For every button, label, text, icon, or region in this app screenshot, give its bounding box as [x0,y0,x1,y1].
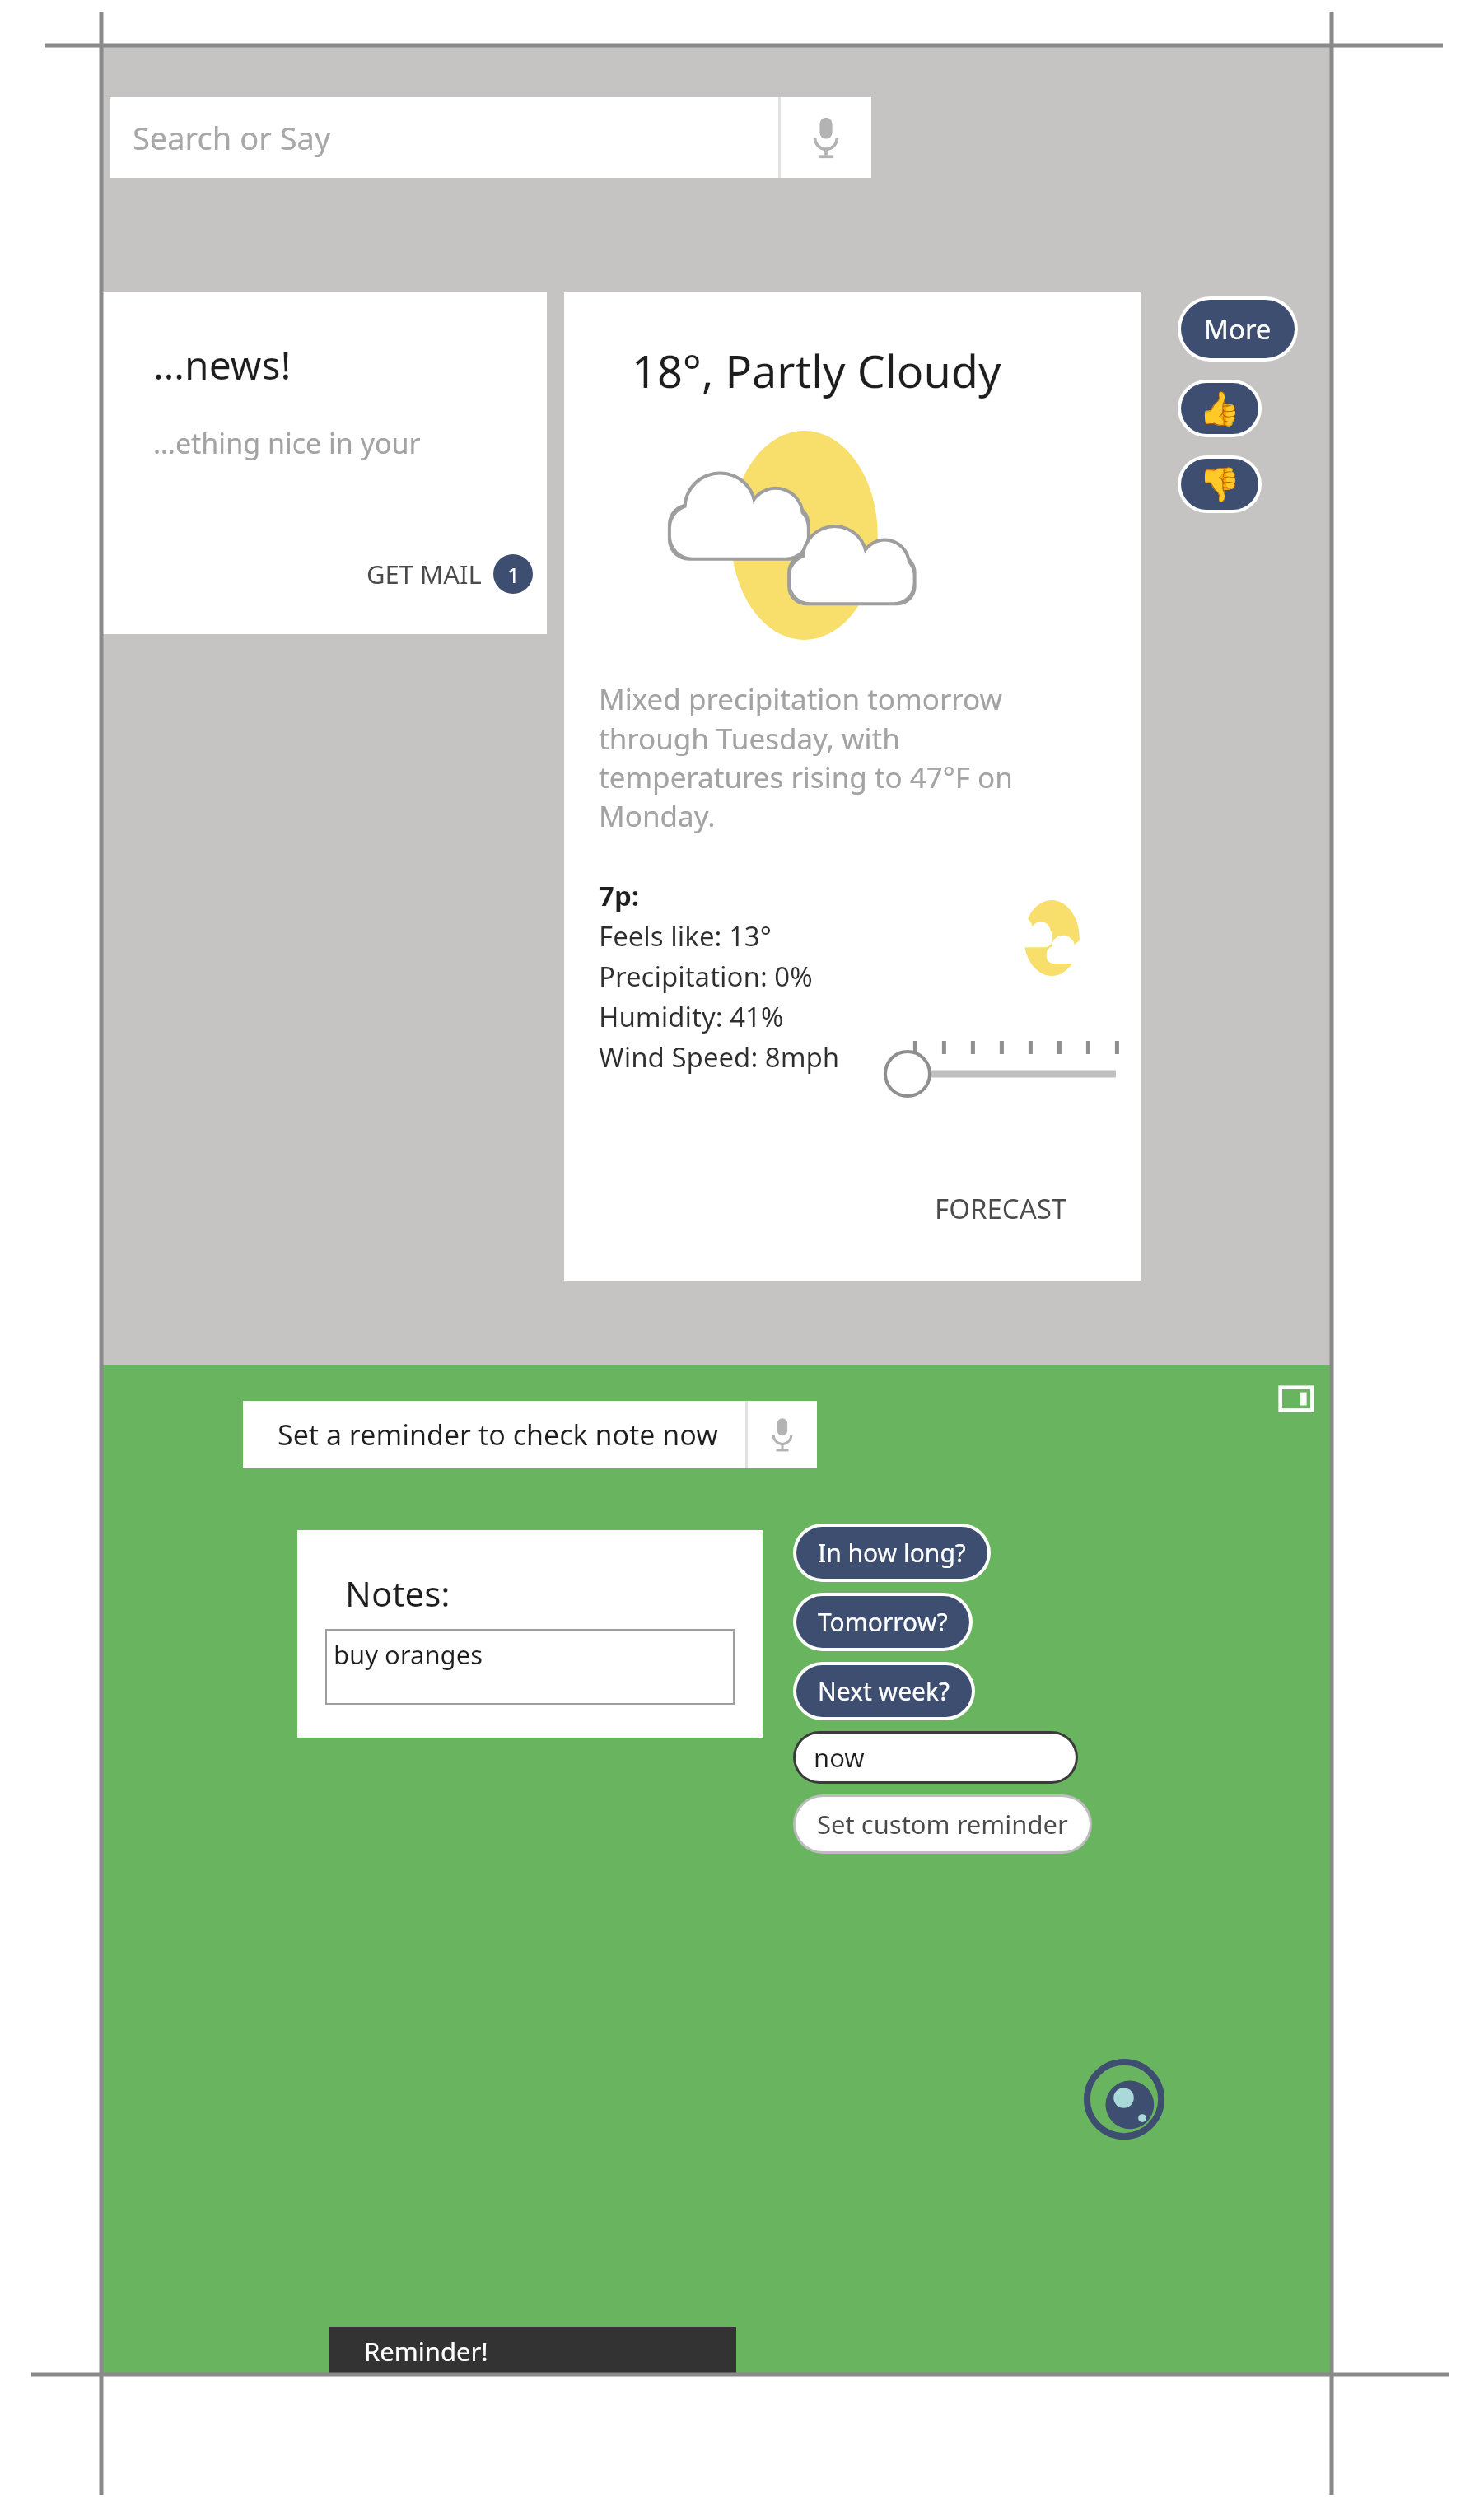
button[interactable]: 18°, Partly Cloudy [564,292,1141,1281]
button[interactable]: Assistant [1084,2059,1164,2140]
button[interactable]: Reminder! [329,2327,736,2374]
staticText: Mixed precipitation tomorrow through Tue… [599,679,1013,835]
staticText: Reminder! [364,2334,488,2368]
button[interactable]: …news! [48,292,547,634]
staticText: 👍 [1199,390,1240,428]
staticText: 👎 [1199,465,1240,504]
staticText: Set a reminder to check note now [278,1416,718,1454]
staticText: FORECAST [935,1190,1067,1227]
button[interactable]: Notes: [297,1530,763,1738]
staticText: 1 [507,560,520,589]
button[interactable]: Thumbs up [1181,383,1258,434]
staticText: More [1204,310,1272,348]
button[interactable]: Voice input [748,1401,817,1468]
button[interactable]: Search or Say [110,97,778,178]
staticText: Humidity: 41% [599,998,784,1035]
button[interactable]: Voice search [781,97,871,178]
staticText: Search or Say [133,116,331,159]
button[interactable]: Toggle layout [1279,1382,1314,1416]
staticText: Precipitation: 0% [599,958,813,995]
staticText: …news! [153,338,292,391]
staticText: 7p: [599,877,640,914]
button[interactable]: More [1181,300,1295,358]
staticText: buy oranges [334,1637,483,1672]
staticText: In how long? [818,1536,966,1570]
staticText: Notes: [345,1570,450,1617]
button[interactable]: Set a reminder to check note now [243,1401,745,1468]
staticText: 18°, Partly Cloudy [632,340,1001,401]
button[interactable]: In how long? [796,1527,987,1579]
staticText: Next week? [818,1674,950,1708]
staticText: …ething nice in your [153,424,421,462]
button[interactable]: Tomorrow? [796,1596,969,1648]
staticText: Set custom reminder [817,1807,1068,1841]
staticText: Feels like: 13° [599,917,772,954]
button[interactable]: Set custom reminder [796,1797,1090,1851]
staticText: Tomorrow? [818,1605,948,1639]
button[interactable]: Next week? [796,1665,972,1717]
button[interactable]: now [796,1734,1076,1781]
staticText: Wind Speed: 8mph [599,1038,840,1076]
staticText: GET MAIL [366,557,482,591]
staticText: now [814,1740,865,1775]
button[interactable]: FORECAST [935,1190,1067,1227]
button[interactable]: Thumbs down [1181,459,1258,510]
